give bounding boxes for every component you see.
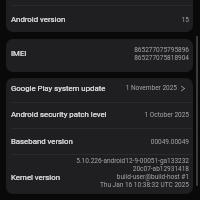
- staticText: Android version: [11, 15, 66, 24]
- button[interactable]: [6, 102, 193, 127]
- staticText: Google Play system update: [11, 84, 106, 93]
- staticText: 1 November 2025: [125, 84, 177, 92]
- staticText: IMEI: [11, 49, 27, 58]
- button[interactable]: [6, 39, 193, 72]
- button[interactable]: [6, 128, 193, 154]
- staticText: Kernel version: [11, 173, 61, 182]
- staticText: 15: [181, 16, 189, 24]
- staticText: build-user@build-host #1: [116, 173, 189, 181]
- staticText: Baseband version: [11, 137, 73, 146]
- staticText: 1 October 2025: [144, 111, 189, 119]
- button[interactable]: [6, 155, 193, 194]
- staticText: 865277075818904: [134, 54, 189, 62]
- staticText: 00049.00049: [150, 138, 189, 146]
- staticText: 20c07-ab12931418: [132, 165, 189, 173]
- staticText: 5.10.226-android12-9-00051-ga133232: [76, 157, 189, 165]
- staticText: Android security patch level: [11, 110, 107, 119]
- button[interactable]: [6, 78, 193, 102]
- staticText: 865277075795896: [134, 46, 189, 54]
- button[interactable]: [6, 6, 193, 32]
- staticText: Thu Jan 16 10:38:32 UTC 2025: [99, 181, 189, 189]
- other: Open Google Play system update: [179, 84, 188, 93]
